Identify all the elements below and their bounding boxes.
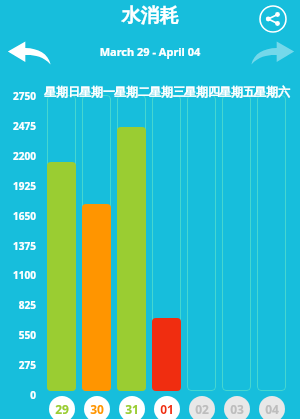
- staticText: 0: [0, 388, 36, 402]
- staticText: 2475: [0, 119, 36, 133]
- staticText: 29: [55, 401, 69, 417]
- staticText: 1925: [0, 179, 36, 193]
- staticText: 31: [125, 401, 139, 417]
- staticText: 275: [0, 358, 36, 372]
- button[interactable]: Previous week: [6, 38, 52, 68]
- staticText: 01: [160, 401, 174, 417]
- button[interactable]: 02: [189, 396, 215, 419]
- button[interactable]: 30: [84, 396, 110, 419]
- staticText: 30: [90, 401, 104, 417]
- staticText: March 29 - April 04: [0, 44, 300, 59]
- staticText: 04: [265, 401, 279, 417]
- staticText: 2750: [0, 89, 36, 103]
- staticText: 1650: [0, 209, 36, 223]
- staticText: 星期五: [212, 84, 262, 99]
- button[interactable]: 31: [119, 396, 145, 419]
- button[interactable]: 01: [154, 396, 180, 419]
- staticText: 825: [0, 298, 36, 312]
- staticText: 550: [0, 328, 36, 342]
- button[interactable]: 03: [224, 396, 250, 419]
- staticText: 星期四: [177, 84, 227, 99]
- staticText: 星期三: [142, 84, 192, 99]
- button[interactable]: 29: [49, 396, 75, 419]
- button[interactable]: Next week: [250, 38, 296, 68]
- button[interactable]: [152, 95, 181, 391]
- staticText: 水消耗: [0, 4, 300, 28]
- button[interactable]: [47, 95, 76, 391]
- button[interactable]: [82, 95, 111, 391]
- staticText: 星期六: [247, 84, 297, 99]
- staticText: 1100: [0, 268, 36, 282]
- button[interactable]: 04: [259, 396, 285, 419]
- staticText: 2200: [0, 149, 36, 163]
- button[interactable]: [257, 95, 286, 391]
- staticText: 03: [230, 401, 244, 417]
- staticText: 星期一: [72, 84, 122, 99]
- staticText: 星期二: [107, 84, 157, 99]
- staticText: 02: [195, 401, 209, 417]
- staticText: 1375: [0, 239, 36, 253]
- button[interactable]: [187, 95, 216, 391]
- button[interactable]: [117, 95, 146, 391]
- staticText: 星期日: [37, 84, 87, 99]
- button[interactable]: [222, 95, 251, 391]
- button[interactable]: Share: [258, 4, 288, 34]
